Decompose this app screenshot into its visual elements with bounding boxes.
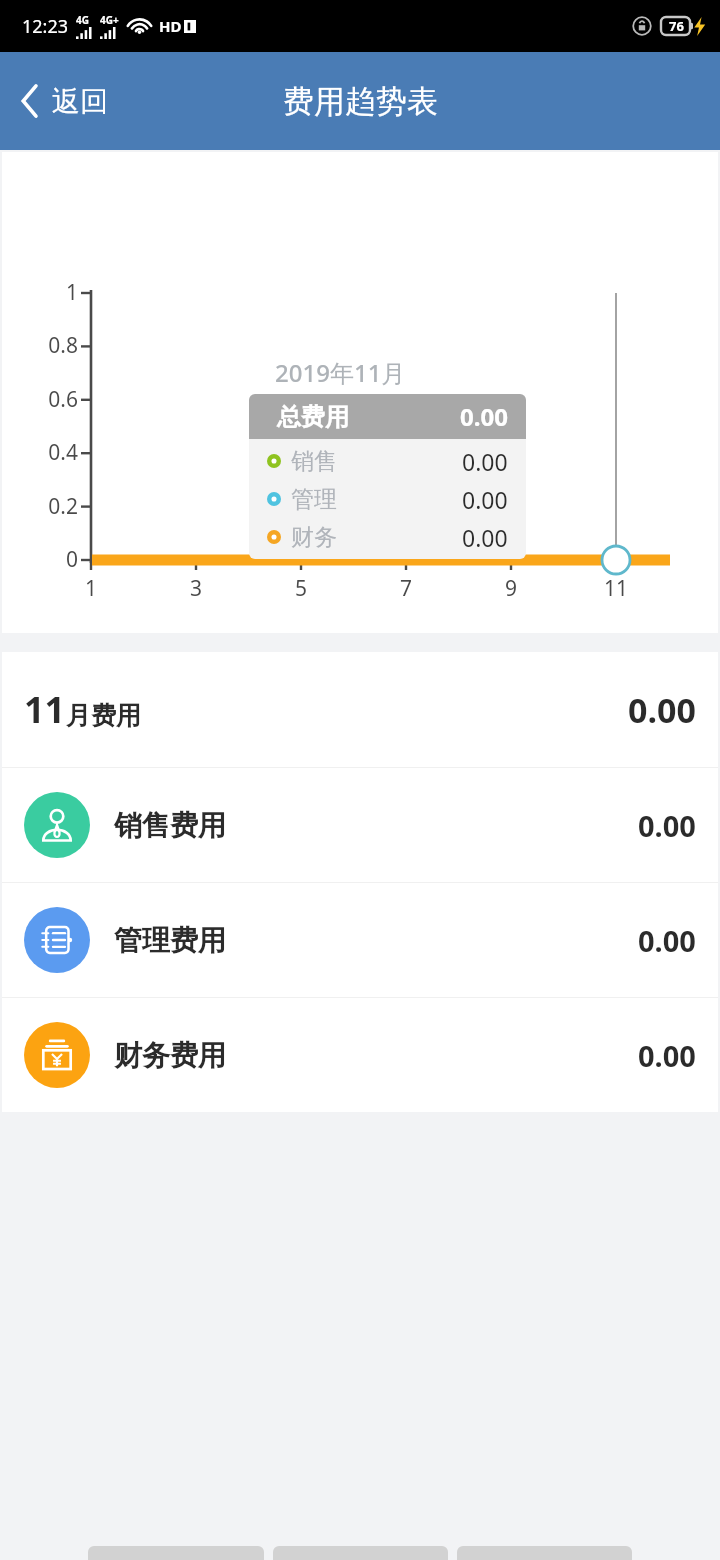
staticText: 财务费用 bbox=[114, 1038, 226, 1073]
staticText: 3 bbox=[190, 574, 203, 603]
staticText: 0 bbox=[65, 545, 78, 574]
staticText: 76 bbox=[669, 17, 684, 35]
staticText: 11 bbox=[24, 685, 66, 734]
button[interactable]: 11 bbox=[2, 652, 718, 767]
staticText: 管理 bbox=[291, 485, 337, 514]
staticText: 12:23 bbox=[22, 14, 69, 39]
staticText: 0.00 bbox=[628, 687, 696, 733]
staticText: 销售费用 bbox=[114, 808, 226, 843]
staticText: 管理费用 bbox=[114, 923, 226, 958]
staticText: 0.00 bbox=[638, 921, 696, 960]
staticText: 0.00 bbox=[638, 1036, 696, 1075]
staticText: 费用趋势表 bbox=[283, 82, 438, 121]
staticText: 0.00 bbox=[460, 400, 508, 433]
staticText: 1 bbox=[65, 278, 78, 307]
button[interactable]: 返回 bbox=[0, 52, 126, 150]
staticText: 销售 bbox=[291, 447, 337, 476]
staticText: 9 bbox=[505, 574, 518, 603]
staticText: 0.6 bbox=[48, 385, 78, 414]
staticText: HD bbox=[159, 16, 182, 36]
staticText: 总费用 bbox=[277, 402, 349, 432]
staticText: 0.00 bbox=[638, 806, 696, 845]
staticText: 0.00 bbox=[462, 446, 508, 477]
staticText: 月费用 bbox=[66, 700, 141, 731]
staticText: 0.00 bbox=[462, 522, 508, 553]
staticText: 0.8 bbox=[48, 331, 78, 360]
staticText: 4G+ bbox=[100, 13, 119, 27]
button[interactable]: Finance expense bbox=[2, 998, 718, 1112]
staticText: 4G bbox=[76, 13, 89, 27]
staticText: 0.00 bbox=[462, 484, 508, 515]
other: Management expense bbox=[24, 907, 90, 973]
staticText: 2019年11月 bbox=[275, 356, 406, 389]
staticText: 财务 bbox=[291, 523, 337, 552]
staticText: 返回 bbox=[52, 84, 108, 119]
staticText: 1 bbox=[85, 574, 98, 603]
staticText: 11 bbox=[604, 574, 629, 603]
staticText: 5 bbox=[295, 574, 308, 603]
staticText: 0.4 bbox=[48, 438, 78, 467]
other: Finance expense bbox=[24, 1022, 90, 1088]
button[interactable]: Sales expense bbox=[2, 768, 718, 882]
staticText: 0.2 bbox=[48, 492, 78, 521]
button[interactable]: Management expense bbox=[2, 883, 718, 997]
other: Sales expense bbox=[24, 792, 90, 858]
staticText: 7 bbox=[400, 574, 413, 603]
